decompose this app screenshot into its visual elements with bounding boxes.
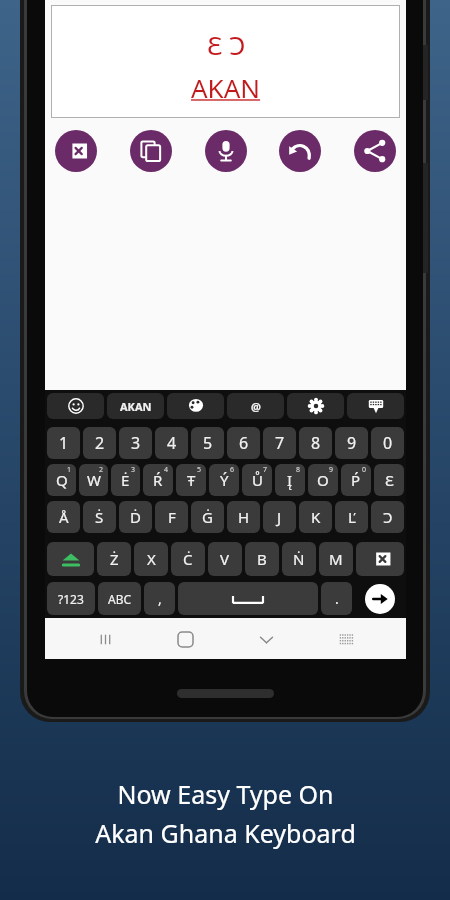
- button[interactable]: Ḋ: [119, 501, 152, 533]
- button[interactable]: Enter: [365, 584, 395, 614]
- staticText: 9: [347, 432, 357, 454]
- staticText: 5: [197, 465, 202, 475]
- staticText: AKAN: [120, 399, 152, 414]
- button[interactable]: 9: [335, 427, 368, 459]
- staticText: 4: [164, 465, 169, 475]
- button[interactable]: Q: [47, 464, 76, 496]
- button[interactable]: M: [319, 542, 353, 576]
- button[interactable]: Voice input: [205, 130, 247, 172]
- button[interactable]: Back: [246, 619, 286, 659]
- button[interactable]: Delete: [55, 130, 97, 172]
- staticText: Ḋ: [130, 507, 141, 527]
- button[interactable]: Ɛ Ɔ: [51, 5, 400, 118]
- staticText: 1: [67, 465, 72, 475]
- staticText: 2: [95, 432, 105, 454]
- staticText: X: [147, 549, 156, 569]
- button[interactable]: @: [227, 393, 284, 419]
- button[interactable]: 1: [47, 427, 80, 459]
- button[interactable]: Ė: [111, 464, 140, 496]
- button[interactable]: V: [208, 542, 242, 576]
- button[interactable]: Copy: [130, 130, 172, 172]
- button[interactable]: Space: [178, 582, 318, 615]
- staticText: 0: [362, 465, 367, 475]
- button[interactable]: 6: [227, 427, 260, 459]
- staticText: O: [317, 470, 329, 490]
- staticText: ,: [158, 589, 162, 608]
- staticText: Å: [59, 507, 69, 527]
- button[interactable]: 2: [83, 427, 116, 459]
- button[interactable]: W: [79, 464, 108, 496]
- staticText: .: [335, 589, 339, 608]
- button[interactable]: 3: [119, 427, 152, 459]
- staticText: 8: [296, 465, 301, 475]
- staticText: H: [238, 507, 250, 527]
- button[interactable]: H: [227, 501, 260, 533]
- button[interactable]: Ŧ: [176, 464, 206, 496]
- button[interactable]: K: [299, 501, 332, 533]
- button[interactable]: Ɛ: [374, 464, 404, 496]
- staticText: B: [257, 549, 267, 569]
- button[interactable]: AKAN: [107, 393, 164, 419]
- staticText: 3: [131, 465, 136, 475]
- button[interactable]: Ġ: [191, 501, 224, 533]
- staticText: Ṡ: [95, 507, 104, 527]
- button[interactable]: Ṕ: [341, 464, 371, 496]
- button[interactable]: J: [263, 501, 296, 533]
- button[interactable]: Ɔ: [371, 501, 404, 533]
- button[interactable]: 0: [371, 427, 404, 459]
- staticText: 3: [131, 432, 141, 454]
- button[interactable]: ?123: [47, 582, 95, 615]
- button[interactable]: Ŕ: [143, 464, 173, 496]
- button[interactable]: Theme: [167, 393, 224, 419]
- button[interactable]: Ṅ: [282, 542, 316, 576]
- staticText: J: [277, 507, 282, 527]
- button[interactable]: ,: [144, 582, 175, 615]
- button[interactable]: Hide keyboard: [347, 393, 404, 419]
- staticText: F: [168, 507, 176, 527]
- button[interactable]: Ṡ: [83, 501, 116, 533]
- button[interactable]: Backspace: [356, 542, 404, 576]
- staticText: 6: [230, 465, 235, 475]
- staticText: Now Easy Type On: [117, 777, 334, 811]
- staticText: M: [329, 549, 343, 569]
- staticText: K: [311, 507, 321, 527]
- button[interactable]: Ý: [209, 464, 239, 496]
- button[interactable]: Home: [165, 619, 205, 659]
- staticText: Ċ: [183, 549, 193, 569]
- staticText: 7: [263, 465, 268, 475]
- staticText: ABC: [108, 591, 132, 607]
- button[interactable]: Keyboard layout: [326, 619, 366, 659]
- button[interactable]: Ľ: [335, 501, 368, 533]
- button[interactable]: Settings: [287, 393, 344, 419]
- button[interactable]: Į: [275, 464, 305, 496]
- button[interactable]: F: [155, 501, 188, 533]
- button[interactable]: 8: [299, 427, 332, 459]
- staticText: Q: [56, 470, 68, 490]
- button[interactable]: X: [134, 542, 168, 576]
- staticText: 4: [167, 432, 177, 454]
- button[interactable]: Shift: [47, 542, 94, 576]
- staticText: @: [251, 399, 261, 414]
- button[interactable]: Ċ: [171, 542, 205, 576]
- staticText: Ż: [110, 549, 119, 569]
- button[interactable]: ABC: [98, 582, 141, 615]
- button[interactable]: Ż: [97, 542, 131, 576]
- button[interactable]: Undo: [279, 130, 321, 172]
- staticText: Ŕ: [153, 470, 163, 490]
- button[interactable]: Ů: [242, 464, 272, 496]
- button[interactable]: Share: [354, 130, 396, 172]
- staticText: W: [87, 470, 101, 490]
- staticText: Ɛ Ɔ: [207, 27, 246, 62]
- button[interactable]: Å: [47, 501, 80, 533]
- button[interactable]: 7: [263, 427, 296, 459]
- button[interactable]: B: [245, 542, 279, 576]
- button[interactable]: Emoji: [47, 393, 104, 419]
- button[interactable]: O: [308, 464, 338, 496]
- button[interactable]: 4: [155, 427, 188, 459]
- staticText: Ė: [121, 470, 130, 490]
- button[interactable]: 5: [191, 427, 224, 459]
- staticText: Ɛ: [385, 470, 394, 490]
- staticText: 9: [329, 465, 334, 475]
- button[interactable]: .: [321, 582, 352, 615]
- button[interactable]: Recents: [85, 619, 125, 659]
